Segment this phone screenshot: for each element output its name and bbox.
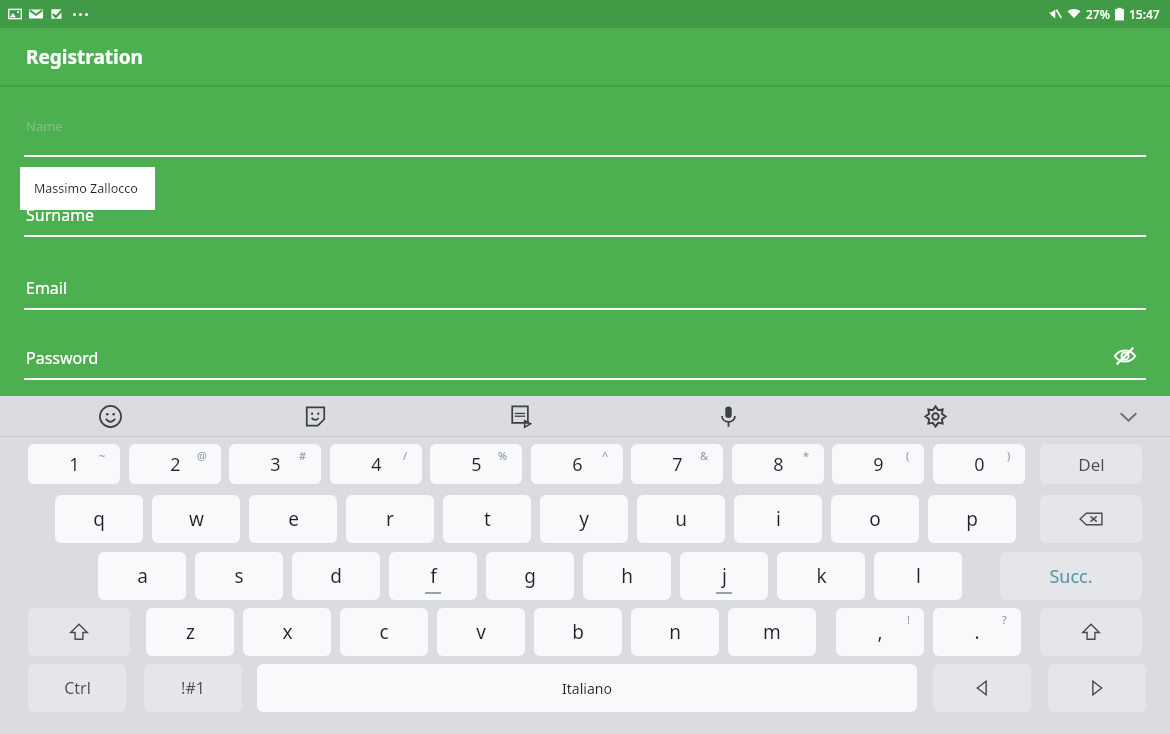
button[interactable]: c [340, 608, 428, 656]
button[interactable]: q [55, 495, 143, 543]
staticText: ) [1007, 448, 1011, 463]
button[interactable]: . [933, 608, 1021, 656]
staticText: n [669, 619, 681, 645]
button[interactable]: Backspace [1040, 495, 1142, 543]
button[interactable]: Ctrl [28, 664, 126, 712]
button[interactable]: Del [1040, 444, 1142, 484]
button[interactable]: Massimo Zallocco [20, 167, 155, 210]
button[interactable]: Registration [0, 28, 1170, 85]
staticText: i [776, 506, 781, 532]
staticText: o [869, 506, 881, 532]
staticText: v [476, 619, 486, 645]
button[interactable]: d [292, 552, 380, 600]
staticText: ( [906, 448, 910, 463]
button[interactable]: 4 [330, 444, 422, 484]
button[interactable]: Stickers [294, 396, 336, 437]
staticText: 0 [974, 452, 985, 477]
button[interactable]: l [874, 552, 962, 600]
button[interactable]: r [346, 495, 434, 543]
staticText: !#1 [181, 677, 205, 699]
button[interactable]: Voice input [707, 396, 749, 437]
button[interactable]: 1 [28, 444, 120, 484]
staticText: b [572, 619, 584, 645]
staticText: c [379, 619, 389, 645]
button[interactable]: z [146, 608, 234, 656]
staticText: Del [1078, 453, 1105, 476]
staticText: w [189, 506, 204, 532]
staticText: Italiano [562, 679, 612, 698]
button[interactable]: 2 [129, 444, 221, 484]
staticText: h [621, 563, 633, 589]
staticText: s [234, 563, 244, 589]
staticText: e [288, 506, 299, 532]
button[interactable]: Emoji [89, 396, 131, 437]
button[interactable]: 5 [430, 444, 522, 484]
staticText: l [916, 563, 921, 589]
button[interactable]: x [243, 608, 331, 656]
staticText: a [137, 563, 148, 589]
staticText: Surname [26, 204, 95, 226]
button[interactable]: e [249, 495, 337, 543]
staticText: ? [1002, 612, 1007, 627]
button[interactable]: Succ. [1000, 552, 1142, 600]
button[interactable]: g [486, 552, 574, 600]
button[interactable]: w [152, 495, 240, 543]
button[interactable]: o [831, 495, 919, 543]
button[interactable]: s [195, 552, 283, 600]
button[interactable]: i [734, 495, 822, 543]
staticText: Name [26, 117, 63, 135]
button[interactable]: 0 [933, 444, 1025, 484]
button[interactable]: a [98, 552, 186, 600]
button[interactable]: b [534, 608, 622, 656]
button[interactable]: GIF [499, 396, 541, 437]
staticText: 4 [371, 452, 382, 477]
button[interactable]: h [583, 552, 671, 600]
staticText: k [816, 563, 827, 589]
button[interactable]: Italiano [257, 664, 917, 712]
staticText: 9 [873, 452, 884, 477]
staticText: 1 [69, 452, 80, 477]
staticText: 6 [572, 452, 583, 477]
staticText: u [675, 506, 687, 532]
button[interactable]: j [680, 552, 768, 600]
staticText: g [524, 563, 536, 589]
button[interactable]: y [540, 495, 628, 543]
button[interactable]: 8 [732, 444, 824, 484]
button[interactable]: Hide keyboard [1107, 396, 1149, 437]
staticText: 2 [170, 452, 181, 477]
button[interactable]: u [637, 495, 725, 543]
button[interactable]: p [928, 495, 1016, 543]
button[interactable]: 3 [229, 444, 321, 484]
staticText: z [186, 619, 195, 645]
button[interactable]: , [836, 608, 924, 656]
staticText: 5 [471, 452, 482, 477]
button[interactable]: Shift [28, 608, 130, 656]
staticText: Ctrl [64, 677, 91, 699]
staticText: 8 [773, 452, 784, 477]
button[interactable]: f [389, 552, 477, 600]
staticText: ^ [602, 448, 609, 463]
button[interactable]: Shift [1040, 608, 1142, 656]
staticText: m [763, 619, 781, 645]
staticText: . [974, 619, 980, 645]
staticText: 27% [1086, 6, 1110, 22]
button[interactable]: Move cursor right [1048, 664, 1146, 712]
button[interactable]: 6 [531, 444, 623, 484]
button[interactable]: !#1 [144, 664, 242, 712]
button[interactable]: k [777, 552, 865, 600]
button[interactable]: n [631, 608, 719, 656]
button[interactable]: 7 [631, 444, 723, 484]
staticText: f [430, 563, 437, 589]
staticText: q [93, 506, 105, 532]
button[interactable]: v [437, 608, 525, 656]
staticText: & [700, 448, 709, 463]
button[interactable]: 9 [832, 444, 924, 484]
staticText: 3 [270, 452, 281, 477]
button[interactable]: Move cursor left [933, 664, 1031, 712]
staticText: , [877, 619, 883, 645]
staticText: r [386, 506, 394, 532]
button[interactable]: m [728, 608, 816, 656]
button[interactable]: Toggle password visibility [1108, 339, 1142, 373]
button[interactable]: t [443, 495, 531, 543]
button[interactable]: Settings [914, 396, 956, 437]
